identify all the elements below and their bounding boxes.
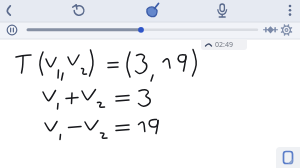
button[interactable] [276, 147, 300, 168]
button[interactable] [0, 0, 22, 22]
button[interactable] [280, 0, 300, 20]
button[interactable] [26, 23, 260, 37]
button[interactable] [141, 0, 163, 22]
button[interactable] [211, 0, 233, 22]
button[interactable] [68, 0, 90, 22]
staticText: 02:49 [215, 40, 233, 50]
button[interactable] [263, 23, 278, 37]
button[interactable] [279, 23, 295, 37]
button[interactable] [4, 22, 21, 39]
button[interactable]: 02:49 [201, 39, 247, 50]
